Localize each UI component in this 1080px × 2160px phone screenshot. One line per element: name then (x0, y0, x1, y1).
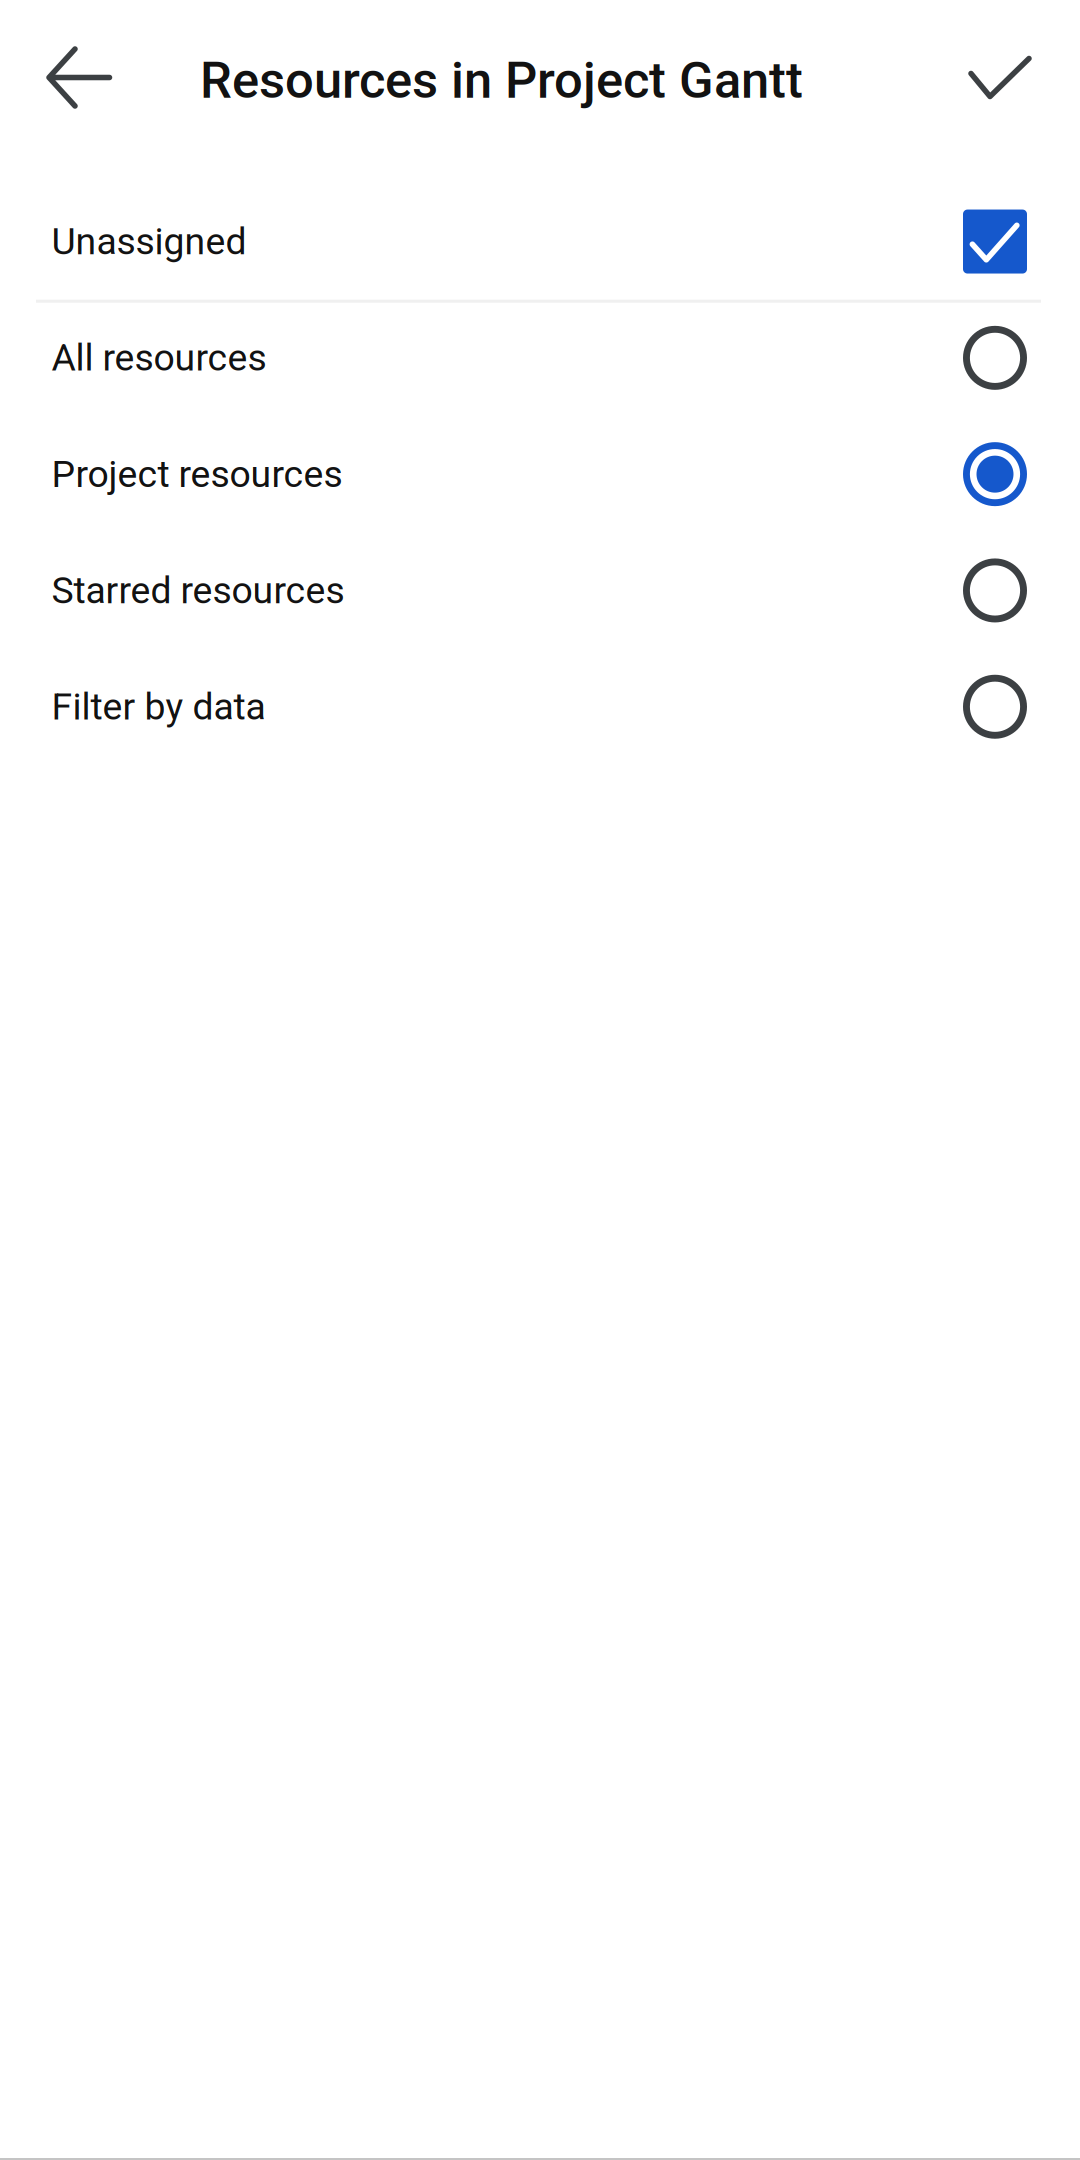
button[interactable]: Back (0, 0, 136, 155)
staticText: Unassigned (51, 220, 246, 263)
staticText: All resources (51, 336, 266, 380)
button[interactable]: Done (944, 0, 1080, 155)
button[interactable]: Unassigned (0, 183, 1080, 300)
staticText: Starred resources (51, 569, 344, 612)
button[interactable]: Starred resources (0, 532, 1080, 649)
staticText: Filter by data (51, 685, 265, 729)
staticText: Project resources (51, 452, 342, 496)
button[interactable]: All resources (0, 300, 1080, 416)
button[interactable]: Filter by data (0, 649, 1080, 765)
staticText: Resources in Project Gantt (200, 51, 803, 110)
button[interactable]: Project resources (0, 416, 1080, 532)
